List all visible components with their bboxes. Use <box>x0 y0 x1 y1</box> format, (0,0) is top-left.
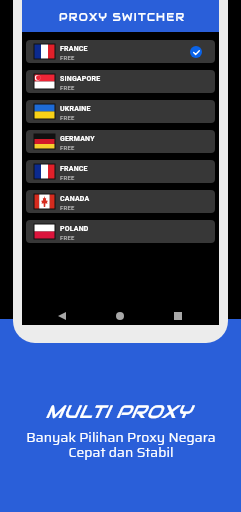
button[interactable]: Back <box>55 309 69 323</box>
staticText: FRANCE <box>60 45 88 53</box>
staticText: FREE <box>60 55 75 62</box>
staticText: CANADA <box>60 195 90 203</box>
button[interactable]: POLAND <box>26 220 215 243</box>
staticText: Banyak Pilihan Proxy Negara Cepat dan St… <box>26 426 216 463</box>
button[interactable]: CANADA <box>26 190 215 213</box>
staticText: FREE <box>60 85 75 92</box>
staticText: POLAND <box>60 225 89 233</box>
button[interactable]: GERMANY <box>26 130 215 153</box>
button[interactable]: SINGAPORE <box>26 70 215 93</box>
button[interactable]: FRANCE <box>26 40 215 63</box>
staticText: FREE <box>60 115 75 122</box>
staticText: UKRAINE <box>60 105 91 113</box>
button[interactable]: FRANCE <box>26 160 215 183</box>
staticText: FRANCE <box>60 165 88 173</box>
staticText: GERMANY <box>60 135 95 143</box>
staticText: FREE <box>60 235 75 242</box>
button[interactable]: UKRAINE <box>26 100 215 123</box>
staticText: SINGAPORE <box>60 75 101 83</box>
staticText: FREE <box>60 205 75 212</box>
staticText: FREE <box>60 175 75 182</box>
button[interactable]: Home <box>113 309 127 323</box>
staticText: MULTI PROXY <box>45 400 191 423</box>
staticText: PROXY SWITCHER <box>59 11 186 24</box>
staticText: FREE <box>60 145 75 152</box>
button[interactable]: Recents <box>171 309 185 323</box>
